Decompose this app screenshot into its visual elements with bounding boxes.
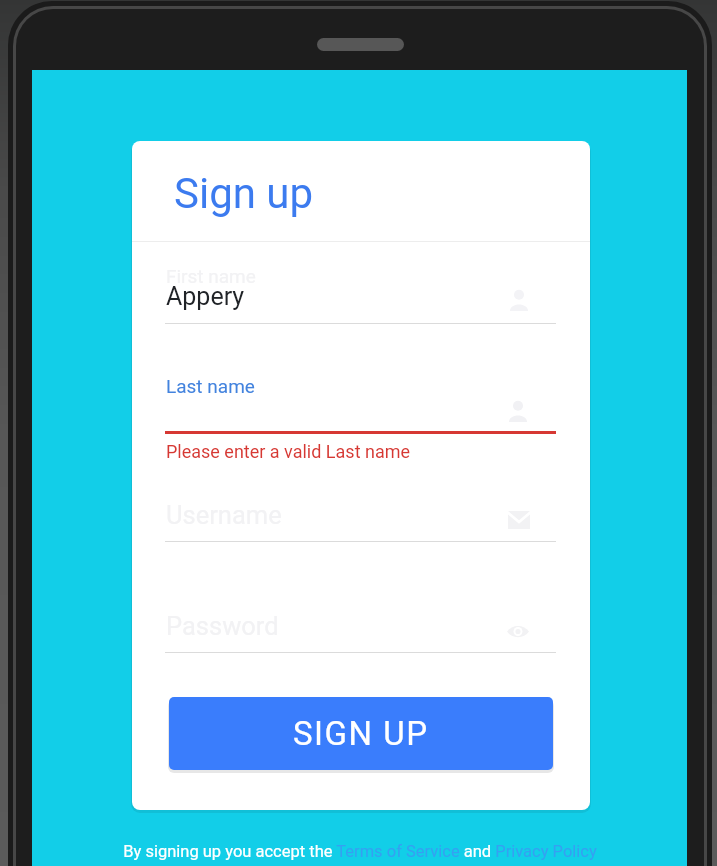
- staticText: Sign up: [174, 169, 314, 218]
- staticText: Last name: [166, 375, 255, 397]
- button[interactable]: Show password: [507, 624, 529, 639]
- staticText: By signing up you accept the Terms of Se…: [123, 842, 597, 861]
- staticText: SIGN UP: [293, 714, 429, 753]
- button[interactable]: SIGN UP: [169, 697, 553, 770]
- staticText: Username: [166, 500, 282, 530]
- staticText: Please enter a valid Last name: [166, 441, 411, 462]
- staticText: Password: [166, 611, 279, 641]
- staticText: Appery: [166, 282, 245, 311]
- staticText: First name: [166, 265, 256, 287]
